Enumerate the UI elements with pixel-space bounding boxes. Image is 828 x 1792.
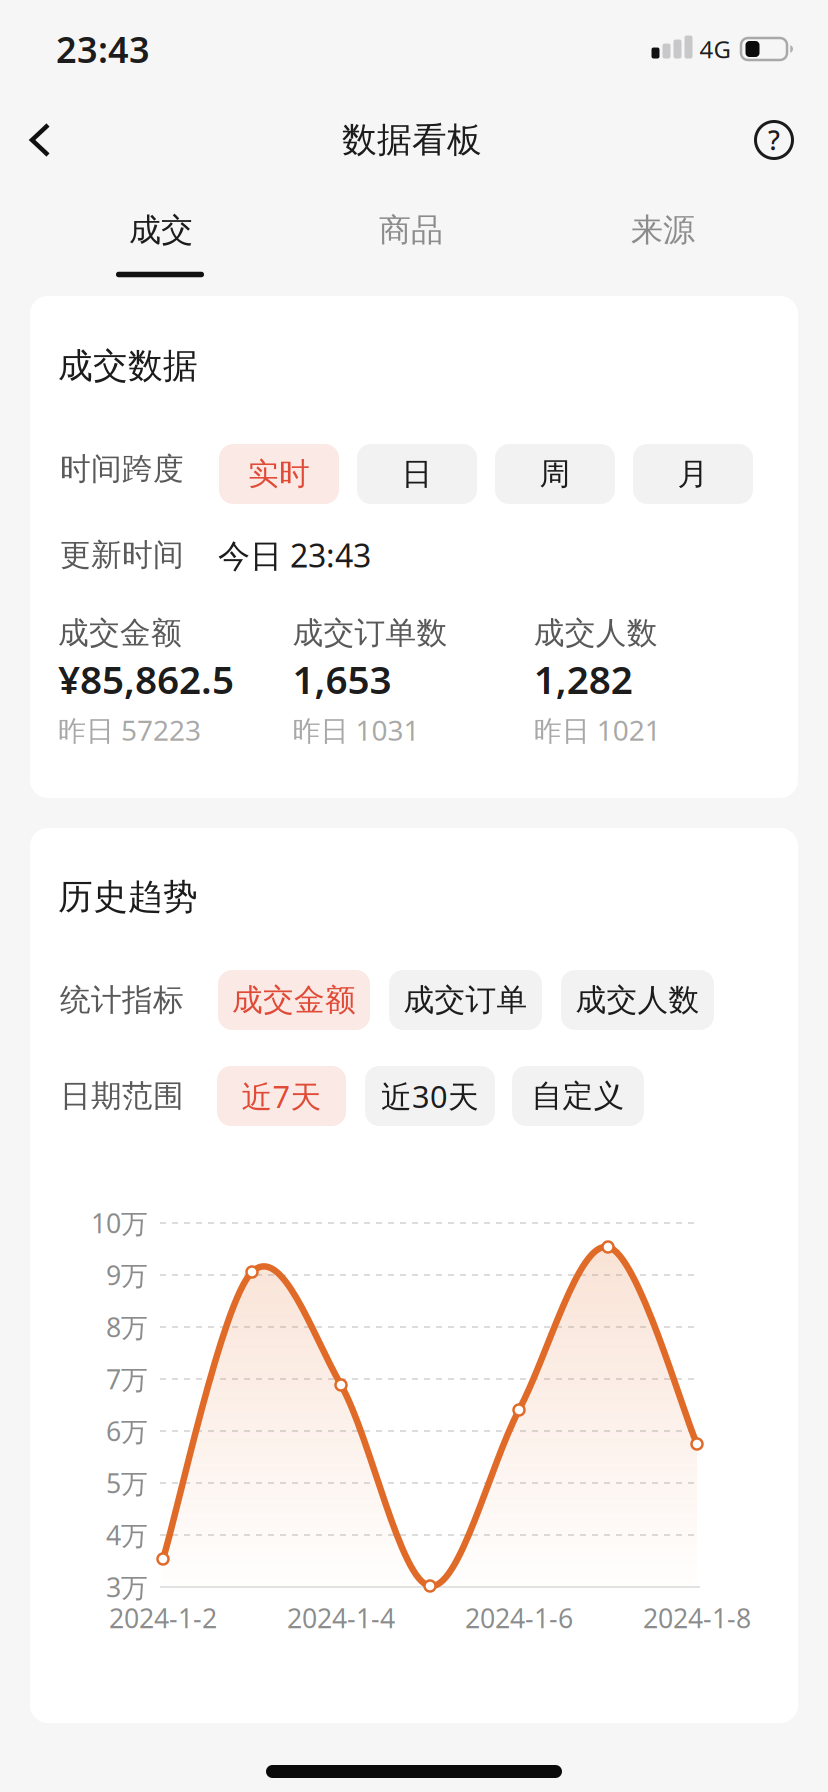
button[interactable]: Help [754,120,794,160]
staticText: 昨日 1021 [534,711,661,749]
staticText: 成交数据 [58,345,198,387]
staticText: 8万 [106,1309,148,1345]
staticText: 成交订单数 [292,614,447,652]
staticText: 成交人数 [534,614,658,652]
button[interactable]: 成交订单 [389,970,542,1030]
staticText: 周 [539,455,570,493]
button[interactable]: 月 [633,444,753,504]
button[interactable]: 成交人数 [561,970,714,1030]
staticText: 6万 [106,1413,148,1449]
button[interactable]: 近30天 [365,1066,495,1126]
button[interactable]: 日 [357,444,477,504]
button[interactable]: 商品 [341,200,481,260]
staticText: 3万 [106,1569,148,1605]
staticText: 9万 [106,1257,148,1293]
staticText: 今日 23:43 [218,534,371,576]
staticText: 近30天 [381,1076,479,1116]
staticText: 商品 [379,210,443,250]
staticText: 成交金额 [58,614,182,652]
staticText: 时间跨度 [60,450,184,488]
staticText: 数据看板 [342,119,482,161]
staticText: 1,282 [534,653,633,705]
staticText: 日期范围 [60,1077,184,1115]
button[interactable]: 实时 [219,444,339,504]
button[interactable]: 周 [495,444,615,504]
staticText: 4万 [106,1517,148,1553]
button[interactable]: 成交金额 [218,970,370,1030]
staticText: 1,653 [292,653,391,705]
button[interactable]: 来源 [593,200,733,260]
staticText: 昨日 57223 [58,711,201,749]
staticText: 成交金额 [232,981,356,1019]
staticText: 10万 [91,1205,148,1241]
staticText: 近7天 [241,1076,321,1116]
staticText: 成交订单 [403,981,527,1019]
staticText: ¥85,862.5 [58,653,234,705]
staticText: 统计指标 [60,981,184,1019]
staticText: 月 [677,455,708,493]
staticText: 2024-1-4 [287,1600,395,1636]
staticText: 5万 [106,1465,148,1501]
staticText: 日 [401,455,432,493]
staticText: 昨日 1031 [292,711,419,749]
button[interactable]: Back [29,123,51,157]
staticText: 实时 [248,455,310,493]
staticText: 成交人数 [575,981,699,1019]
staticText: 成交 [129,210,193,250]
staticText: 2024-1-8 [643,1600,751,1636]
staticText: 更新时间 [60,536,184,574]
button[interactable]: 成交 [91,200,231,260]
staticText: 2024-1-2 [109,1600,217,1636]
staticText: 23:43 [56,25,150,73]
staticText: 自定义 [531,1077,624,1115]
staticText: 7万 [106,1361,148,1397]
staticText: 2024-1-6 [465,1600,573,1636]
staticText: 来源 [631,210,695,250]
staticText: 4G [699,33,730,65]
button[interactable]: 自定义 [512,1066,644,1126]
staticText: 历史趋势 [58,876,198,918]
button[interactable]: 近7天 [217,1066,346,1126]
staticText: ? [768,122,780,158]
